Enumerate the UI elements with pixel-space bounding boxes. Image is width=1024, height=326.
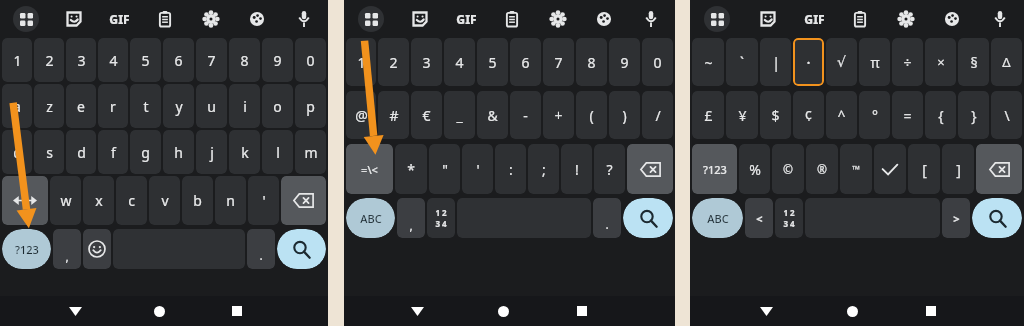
button[interactable]: g bbox=[130, 130, 161, 174]
button[interactable]: 2 bbox=[378, 38, 409, 86]
button[interactable]: _ bbox=[444, 91, 475, 139]
button[interactable]: p bbox=[295, 84, 326, 128]
button[interactable]: 5 bbox=[477, 38, 508, 86]
button[interactable]: / bbox=[642, 91, 673, 139]
button[interactable]: { bbox=[925, 91, 956, 139]
button[interactable]: + bbox=[543, 91, 574, 139]
button[interactable]: 0 bbox=[295, 38, 326, 82]
button[interactable]: 7 bbox=[543, 38, 574, 86]
button[interactable]: GIF bbox=[96, 0, 142, 37]
button[interactable]: ? bbox=[594, 144, 625, 194]
button[interactable]: z bbox=[34, 84, 64, 128]
button[interactable]: w bbox=[50, 176, 81, 225]
button[interactable]: 1 bbox=[346, 38, 376, 86]
button[interactable]: k bbox=[229, 130, 260, 174]
button[interactable]: Home bbox=[142, 296, 177, 326]
button[interactable]: 5 bbox=[130, 38, 161, 82]
button[interactable]: ] bbox=[942, 144, 974, 194]
button[interactable]: Themes bbox=[234, 0, 280, 37]
button[interactable]: - bbox=[510, 91, 541, 139]
button[interactable]: ?123 bbox=[2, 229, 51, 269]
button[interactable]: Shift bbox=[2, 176, 48, 225]
button[interactable]: c bbox=[116, 176, 147, 225]
button[interactable]: # bbox=[378, 91, 409, 139]
button[interactable]: i bbox=[229, 84, 260, 128]
button[interactable]: © bbox=[772, 144, 804, 194]
button[interactable]: j bbox=[196, 130, 227, 174]
button[interactable]: 3 bbox=[66, 38, 96, 82]
button[interactable]: o bbox=[262, 84, 293, 128]
button[interactable]: Recents bbox=[913, 296, 949, 326]
button[interactable]: Backspace bbox=[976, 144, 1022, 194]
button[interactable]: ~ bbox=[692, 38, 724, 86]
button[interactable]: 6 bbox=[163, 38, 194, 82]
button[interactable]: e bbox=[66, 84, 96, 128]
button[interactable]: GIF bbox=[443, 0, 489, 37]
button[interactable]: [ bbox=[908, 144, 940, 194]
button[interactable]: 7 bbox=[196, 38, 227, 82]
button[interactable]: × bbox=[925, 38, 956, 86]
button[interactable]: l bbox=[262, 130, 293, 174]
button[interactable]: Apps bbox=[344, 0, 397, 37]
button[interactable]: Backspace bbox=[627, 144, 673, 194]
button[interactable]: ¥ bbox=[726, 91, 758, 139]
button[interactable]: m bbox=[295, 130, 326, 174]
button[interactable]: ?123 bbox=[692, 144, 737, 194]
button[interactable]: d bbox=[66, 130, 96, 174]
button[interactable]: h bbox=[163, 130, 194, 174]
button[interactable]: ™ bbox=[840, 144, 872, 194]
button[interactable]: Back bbox=[57, 296, 93, 326]
button[interactable]: . bbox=[247, 229, 275, 269]
button[interactable]: , bbox=[53, 229, 81, 269]
button[interactable]: GIF bbox=[791, 0, 837, 37]
button[interactable]: % bbox=[739, 144, 770, 194]
button[interactable]: : bbox=[495, 144, 526, 194]
button[interactable]: Clipboard bbox=[837, 0, 883, 37]
button[interactable]: Search bbox=[277, 229, 326, 269]
button[interactable]: Search bbox=[972, 198, 1022, 238]
button[interactable]: 0 bbox=[642, 38, 673, 86]
button[interactable]: $ bbox=[760, 91, 791, 139]
button[interactable]: Settings bbox=[188, 0, 234, 37]
button[interactable]: £ bbox=[692, 91, 724, 139]
button[interactable]: ABC bbox=[346, 198, 395, 238]
button[interactable]: ( bbox=[576, 91, 607, 139]
button[interactable]: Stickers bbox=[51, 0, 96, 37]
button[interactable]: t bbox=[130, 84, 161, 128]
button[interactable]: u bbox=[196, 84, 227, 128]
button[interactable]: v bbox=[149, 176, 180, 225]
button[interactable]: ' bbox=[462, 144, 493, 194]
button[interactable]: & bbox=[477, 91, 508, 139]
button[interactable]: Settings bbox=[535, 0, 581, 37]
button[interactable]: ¢ bbox=[793, 91, 824, 139]
button[interactable]: n bbox=[215, 176, 246, 225]
button[interactable]: ® bbox=[806, 144, 838, 194]
button[interactable]: Home bbox=[834, 296, 870, 326]
button[interactable]: Clipboard bbox=[142, 0, 188, 37]
button[interactable]: Voice input bbox=[975, 0, 1024, 37]
button[interactable]: 6 bbox=[510, 38, 541, 86]
button[interactable]: . bbox=[593, 198, 621, 238]
button[interactable]: 1 2 bbox=[775, 198, 803, 238]
button[interactable]: ' bbox=[248, 176, 279, 225]
button[interactable]: Backspace bbox=[281, 176, 326, 225]
button[interactable]: 1 bbox=[2, 38, 32, 82]
button[interactable]: = bbox=[892, 91, 923, 139]
button[interactable]: @ bbox=[346, 91, 376, 139]
button[interactable]: q bbox=[2, 130, 32, 174]
button[interactable]: * bbox=[395, 144, 427, 194]
button[interactable]: Recents bbox=[564, 296, 600, 326]
button[interactable]: r bbox=[98, 84, 128, 128]
button[interactable]: Clipboard bbox=[489, 0, 535, 37]
button[interactable]: 1 2 bbox=[427, 198, 455, 238]
button[interactable]: Back bbox=[748, 296, 784, 326]
button[interactable]: Voice input bbox=[627, 0, 675, 37]
button[interactable]: 4 bbox=[98, 38, 128, 82]
button[interactable]: ° bbox=[859, 91, 890, 139]
button[interactable]: Back bbox=[400, 296, 435, 326]
button[interactable]: ` bbox=[726, 38, 758, 86]
button[interactable]: x bbox=[83, 176, 114, 225]
button[interactable]: ! bbox=[561, 144, 592, 194]
button[interactable]: Themes bbox=[581, 0, 627, 37]
button[interactable]: ÷ bbox=[892, 38, 923, 86]
